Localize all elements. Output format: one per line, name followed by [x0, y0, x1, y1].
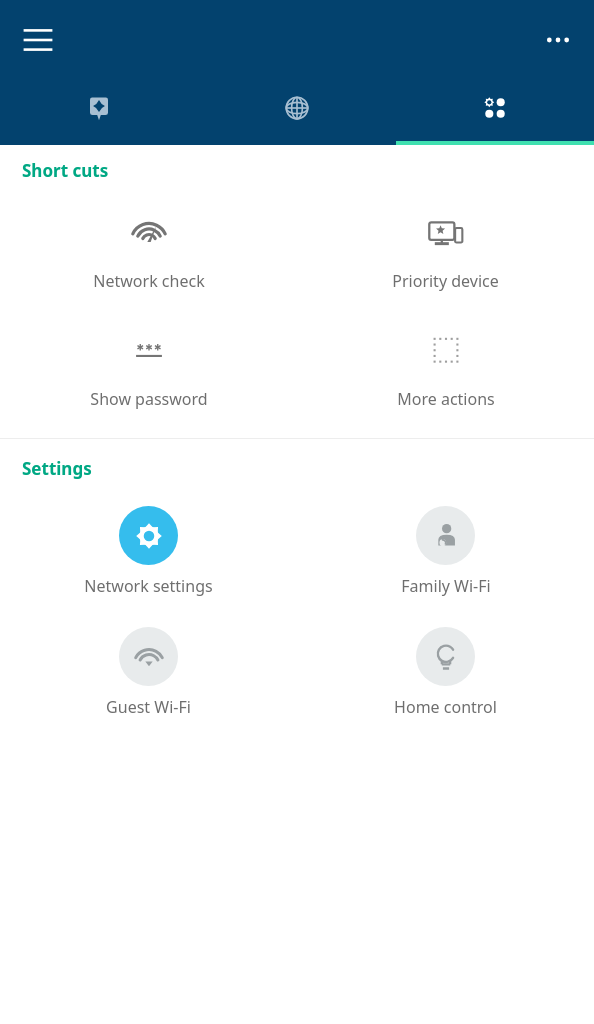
button[interactable]: Home control [297, 623, 594, 722]
button[interactable]: Guest Wi-Fi [0, 623, 297, 722]
staticText: Show password [90, 388, 208, 410]
staticText: Short cuts [22, 159, 109, 182]
button[interactable]: Assistant [0, 76, 198, 145]
button[interactable]: Network check [0, 204, 297, 298]
staticText: Settings [22, 457, 92, 480]
button[interactable]: Family Wi-Fi [297, 502, 594, 601]
button[interactable]: Network settings [0, 502, 297, 601]
button[interactable]: Settings [396, 76, 594, 145]
staticText: Home control [394, 696, 497, 718]
button[interactable]: Network [198, 76, 396, 145]
staticText: Network settings [84, 575, 213, 597]
staticText: Family Wi-Fi [401, 575, 491, 597]
staticText: More actions [397, 388, 495, 410]
button[interactable]: Priority device [297, 204, 594, 298]
button[interactable]: More actions [297, 322, 594, 416]
staticText: Priority device [392, 270, 499, 292]
button[interactable]: Show password [0, 322, 297, 416]
button[interactable]: Menu [14, 16, 62, 64]
staticText: Network check [93, 270, 205, 292]
button[interactable]: More options [534, 16, 582, 64]
staticText: Guest Wi-Fi [106, 696, 191, 718]
